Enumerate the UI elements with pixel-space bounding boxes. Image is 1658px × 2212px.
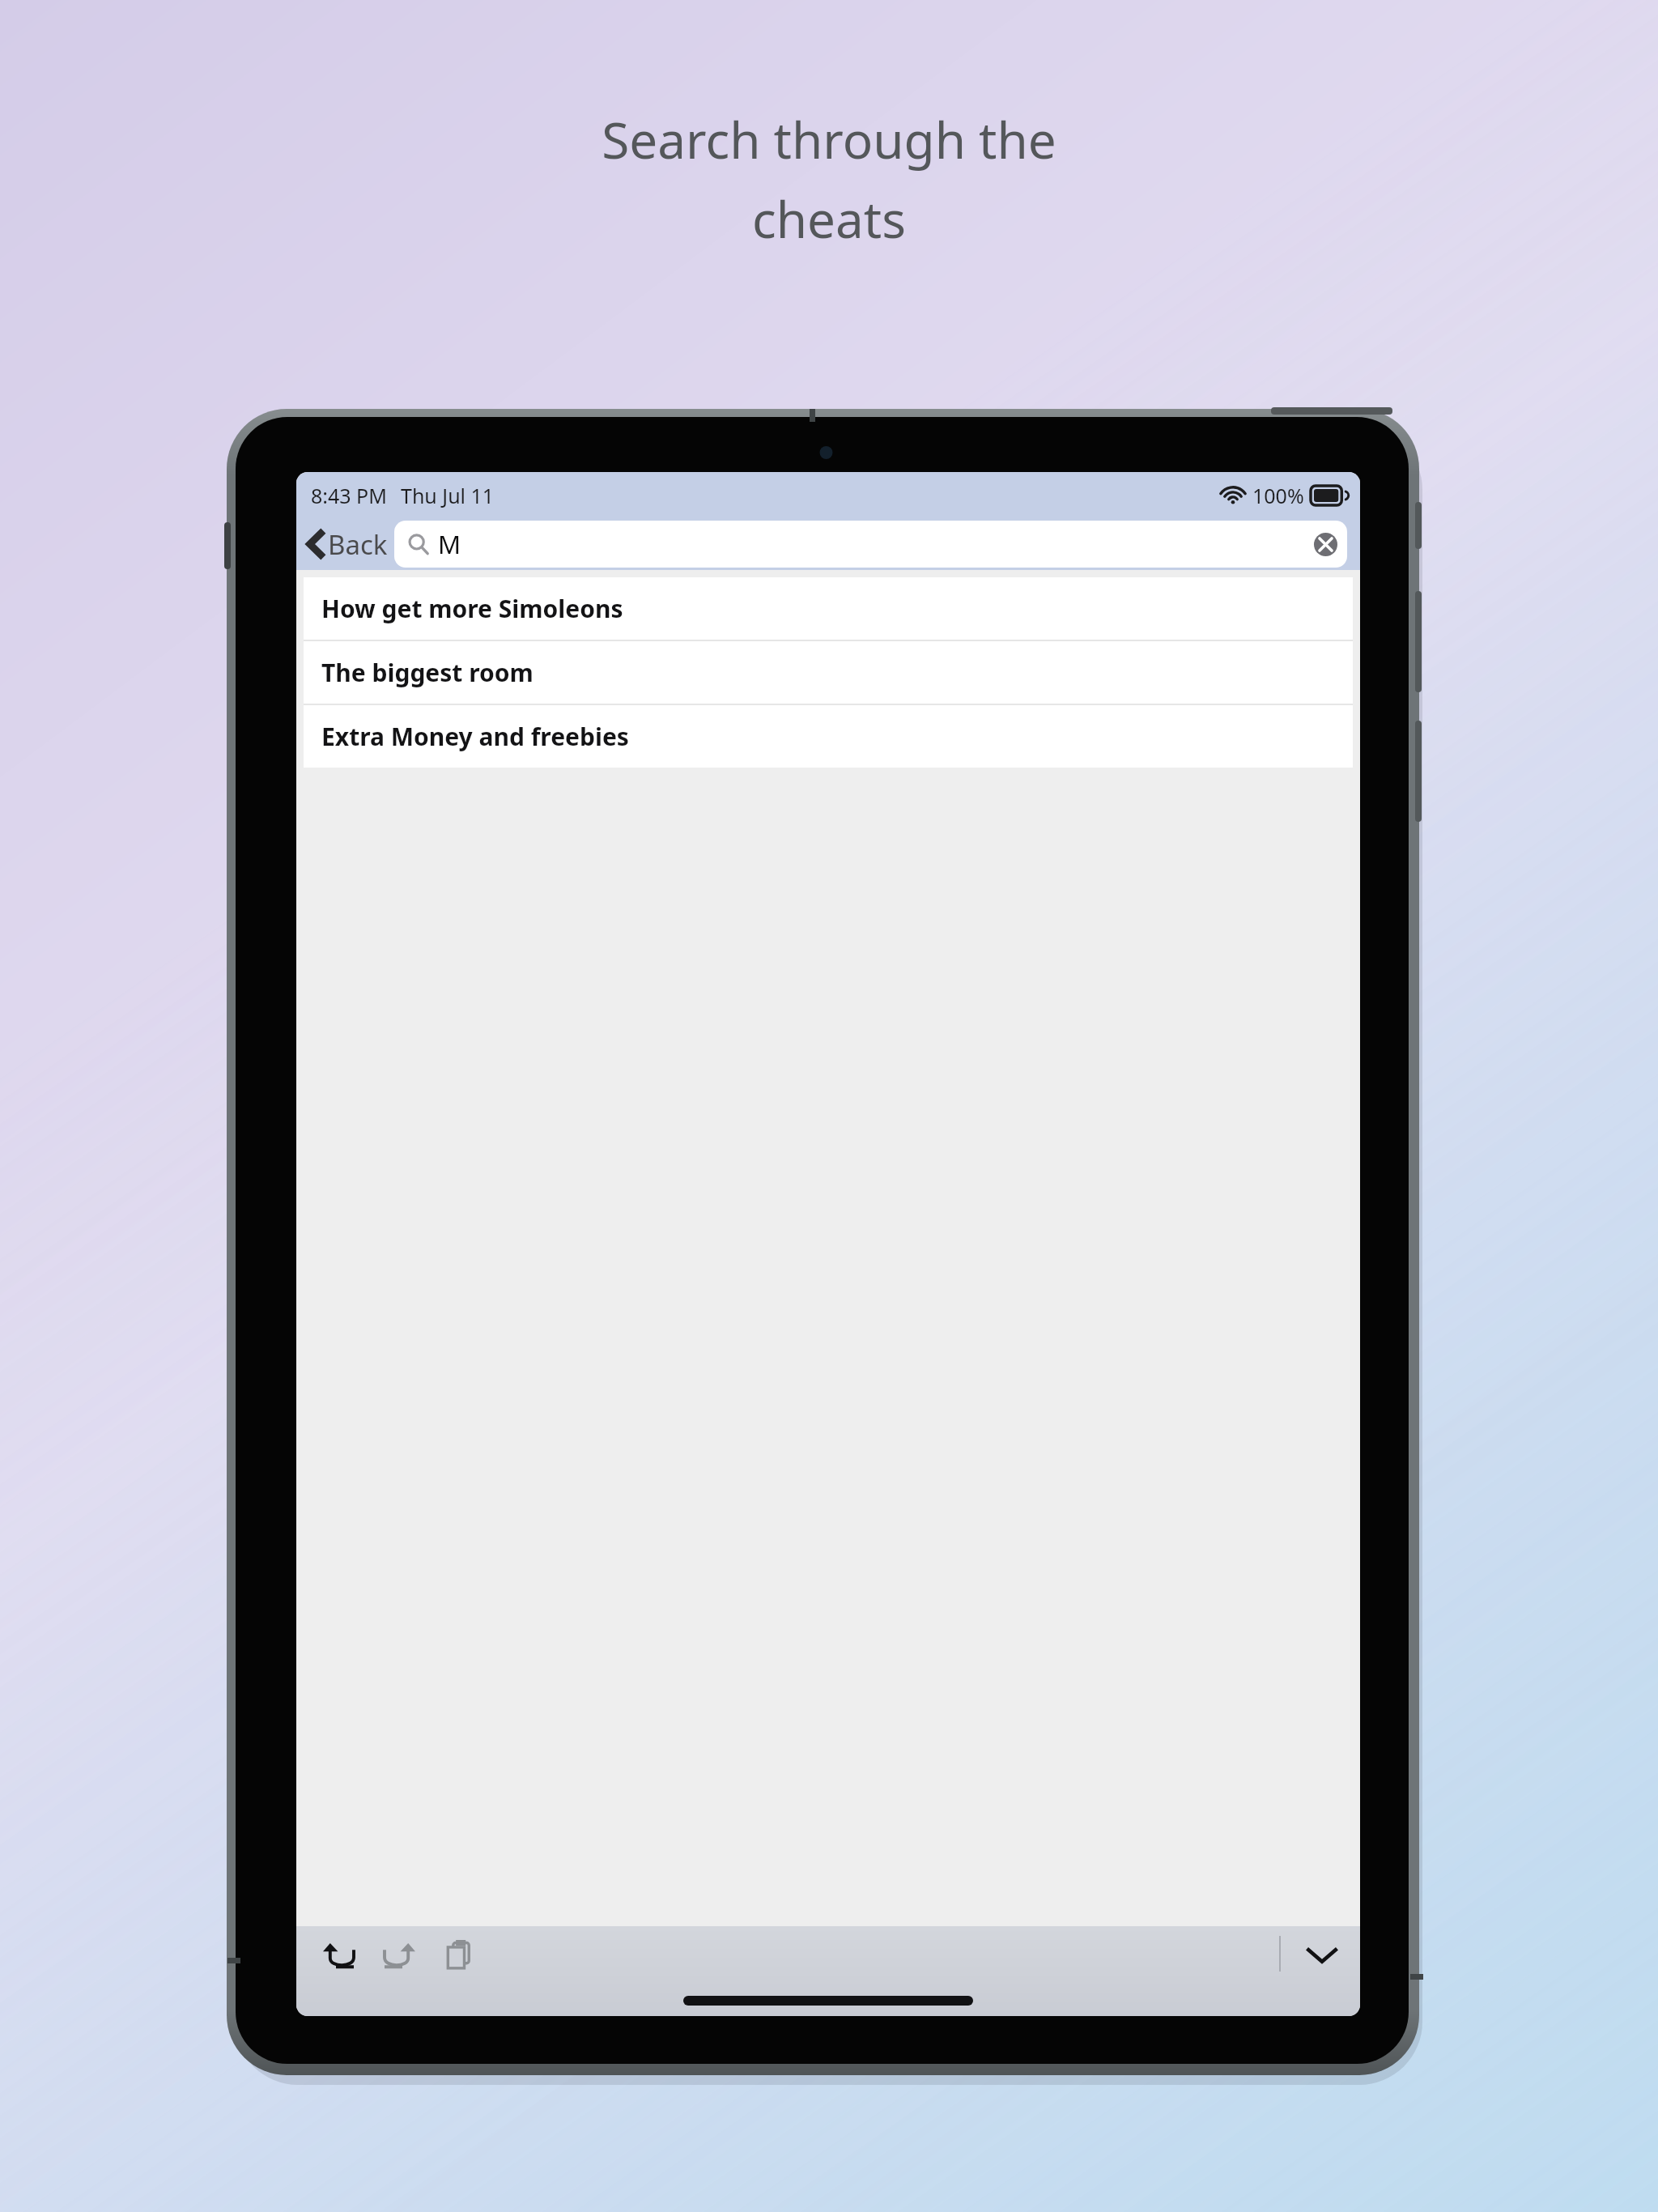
button[interactable]: Redo <box>372 1929 426 1982</box>
staticText: The biggest room <box>321 656 534 689</box>
staticText: 100% <box>1252 482 1304 509</box>
staticText: Search through the <box>602 105 1056 173</box>
staticText: Extra Money and freebies <box>321 720 629 753</box>
button[interactable]: Hide keyboard <box>1295 1929 1349 1982</box>
button[interactable]: M <box>394 521 1347 568</box>
staticText: cheats <box>752 185 906 253</box>
staticText: M <box>438 527 461 561</box>
button[interactable]: The biggest room <box>304 641 1353 705</box>
staticText: 8:43 PM <box>311 482 387 509</box>
button[interactable]: How get more Simoleons <box>304 577 1353 641</box>
button[interactable]: Back <box>296 518 394 570</box>
button[interactable]: Paste <box>432 1929 486 1982</box>
button[interactable]: Extra Money and freebies <box>304 705 1353 768</box>
staticText: Back <box>328 526 388 563</box>
button[interactable]: Undo <box>312 1929 366 1982</box>
staticText: How get more Simoleons <box>321 592 623 625</box>
staticText: Thu Jul 11 <box>401 482 495 509</box>
button[interactable]: Clear search <box>1307 525 1344 563</box>
